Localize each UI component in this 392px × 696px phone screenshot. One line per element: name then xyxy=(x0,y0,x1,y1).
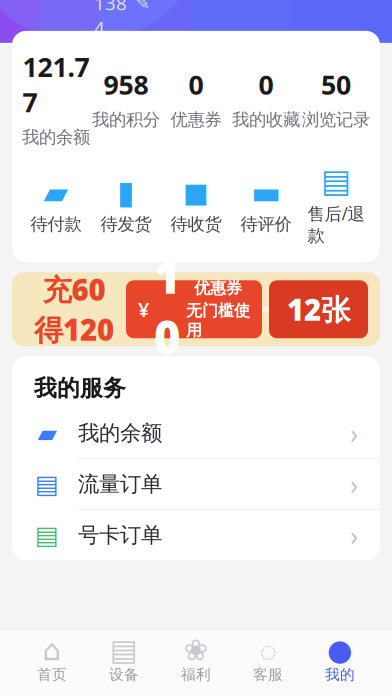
staticText: ◌ xyxy=(259,630,276,669)
staticText: 我的 xyxy=(325,665,355,683)
staticText: 售后/退款 xyxy=(307,202,364,246)
staticText: 待发货 xyxy=(100,213,151,235)
staticText: 浏览记录 xyxy=(302,109,370,130)
staticText: ▤ xyxy=(110,633,138,667)
button[interactable]: ▮ xyxy=(91,179,161,235)
staticText: ▬ xyxy=(251,174,281,211)
staticText: › xyxy=(350,517,358,553)
button[interactable]: 958 xyxy=(91,67,161,130)
button[interactable]: ● xyxy=(304,636,376,684)
button[interactable]: 编辑昵称 xyxy=(134,0,152,12)
staticText: ID: 1384 xyxy=(94,0,127,40)
button[interactable]: 121.77 xyxy=(21,49,91,148)
staticText: 50 xyxy=(321,67,351,102)
button[interactable]: ▤ xyxy=(301,168,371,246)
staticText: 我的积分 xyxy=(92,109,160,130)
staticText: 我的余额 xyxy=(22,127,90,148)
staticText: 设备 xyxy=(109,665,139,683)
staticText: 充60 xyxy=(42,270,105,309)
button[interactable]: ◼ xyxy=(161,179,231,235)
staticText: ▤ xyxy=(35,470,59,499)
staticText: 优惠券 xyxy=(170,109,221,130)
button[interactable]: 50 xyxy=(301,67,371,130)
button[interactable]: ▤ xyxy=(88,636,160,684)
staticText: › xyxy=(350,466,358,502)
button[interactable]: ◌ xyxy=(232,636,304,684)
staticText: 0 xyxy=(188,67,203,102)
staticText: 我的收藏 xyxy=(232,109,300,130)
staticText: 958 xyxy=(103,67,148,102)
staticText: ▮ xyxy=(117,174,135,211)
staticText: ¥ xyxy=(138,296,149,323)
staticText: 无门槛使用 xyxy=(186,301,250,340)
staticText: 待评价 xyxy=(240,213,291,235)
staticText: › xyxy=(350,415,358,451)
staticText: 客服 xyxy=(253,665,283,683)
staticText: 流量订单 xyxy=(78,471,162,497)
staticText: 得120 xyxy=(34,310,114,349)
staticText: ▤ xyxy=(35,521,59,550)
staticText: ▤ xyxy=(321,163,351,199)
button[interactable]: ▤ xyxy=(12,510,380,560)
staticText: 10 xyxy=(154,246,181,366)
button[interactable]: 0 xyxy=(231,67,301,130)
staticText: ❀ xyxy=(183,633,208,667)
staticText: 我的服务 xyxy=(34,374,126,402)
staticText: 优惠券 xyxy=(194,278,242,298)
staticText: 0 xyxy=(258,67,273,102)
staticText: ◼ xyxy=(182,174,209,211)
button[interactable]: ▰ xyxy=(21,179,91,235)
staticText: 首页 xyxy=(37,665,67,683)
button[interactable]: ▬ xyxy=(231,179,301,235)
staticText: 待付款 xyxy=(30,213,81,235)
button[interactable]: ▤ xyxy=(12,459,380,510)
staticText: ⌂ xyxy=(42,633,61,667)
staticText: 12张 xyxy=(287,290,350,329)
staticText: 我的余额 xyxy=(78,420,162,446)
button[interactable]: ▰ xyxy=(12,408,380,459)
button[interactable]: ⌂ xyxy=(16,636,88,684)
staticText: ▰ xyxy=(37,419,56,448)
staticText: 121.77 xyxy=(22,49,89,120)
button[interactable]: 0 xyxy=(161,67,231,130)
staticText: 福利 xyxy=(181,665,211,683)
staticText: ✎ xyxy=(135,0,150,13)
button[interactable]: 充60 xyxy=(12,272,380,346)
staticText: 号卡订单 xyxy=(78,522,162,548)
staticText: 待收货 xyxy=(170,213,221,235)
staticText: ▰ xyxy=(43,174,68,211)
staticText: ● xyxy=(327,633,353,667)
button[interactable]: ❀ xyxy=(160,636,232,684)
